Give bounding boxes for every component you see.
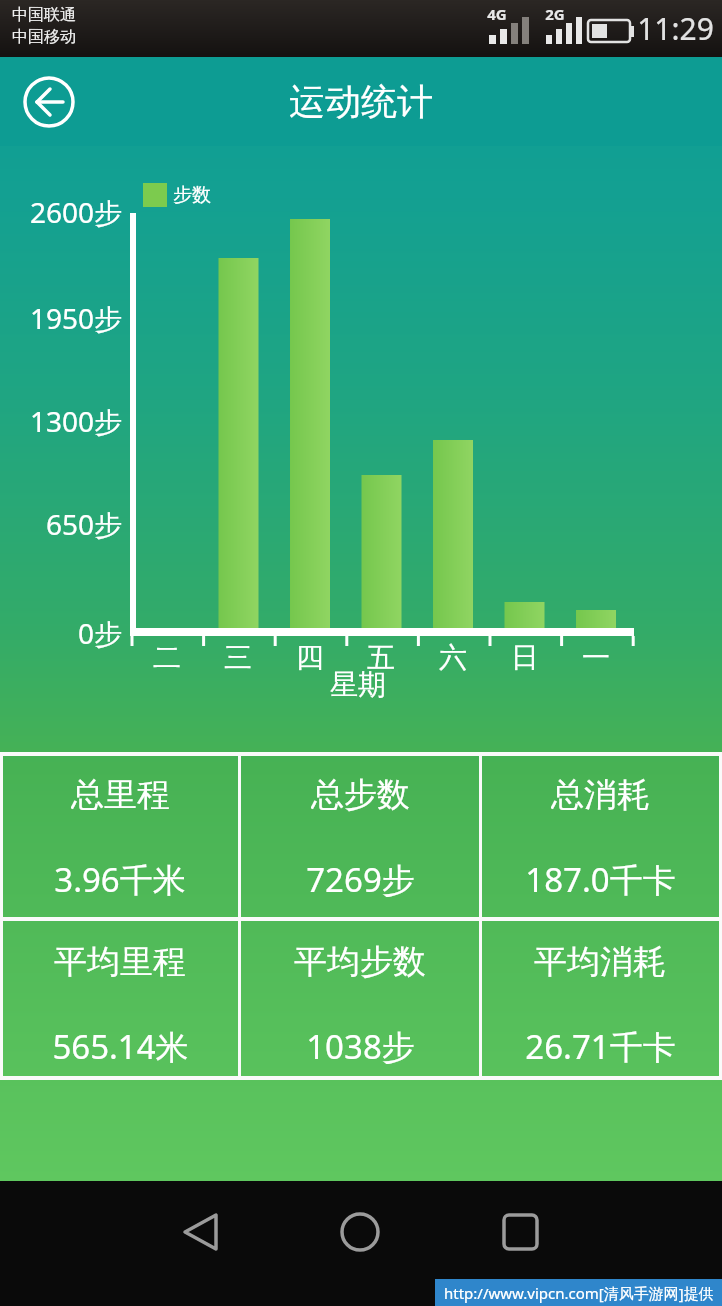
staticText: 2G: [545, 4, 565, 24]
staticText: 中国移动: [12, 27, 76, 47]
staticText: 步数: [173, 183, 211, 207]
staticText: 1950步: [29, 299, 122, 335]
staticText: 0步: [77, 614, 122, 650]
staticText: 三: [224, 640, 252, 674]
staticText: 一: [582, 640, 610, 674]
staticText: 运动统计: [289, 79, 433, 123]
staticText: 26.71千卡: [525, 1024, 676, 1064]
staticText: 11:29: [637, 8, 714, 48]
staticText: 平均里程: [54, 941, 186, 981]
staticText: 4G: [487, 4, 507, 24]
staticText: 日: [511, 640, 539, 674]
button[interactable]: [14, 67, 84, 137]
staticText: 五: [367, 640, 395, 674]
staticText: 565.14米: [52, 1024, 189, 1064]
staticText: 六: [439, 640, 467, 674]
button[interactable]: [480, 1192, 560, 1272]
staticText: 二: [153, 640, 181, 674]
staticText: http://www.vipcn.com[清风手游网]提供: [444, 1283, 714, 1303]
staticText: 总消耗: [551, 774, 650, 814]
button[interactable]: [162, 1192, 242, 1272]
staticText: 平均步数: [294, 941, 426, 981]
staticText: 星期: [330, 667, 386, 701]
staticText: 1038步: [306, 1024, 415, 1064]
staticText: 2600步: [29, 193, 122, 229]
staticText: 187.0千卡: [525, 857, 676, 897]
staticText: 总里程: [71, 774, 170, 814]
staticText: 7269步: [306, 857, 415, 897]
staticText: 四: [296, 640, 324, 674]
staticText: 3.96千米: [54, 857, 186, 897]
staticText: 平均消耗: [534, 941, 666, 981]
button[interactable]: [320, 1192, 400, 1272]
staticText: 中国联通: [12, 5, 76, 25]
staticText: 总步数: [311, 774, 410, 814]
staticText: 650步: [45, 505, 122, 541]
staticText: 1300步: [29, 402, 122, 438]
